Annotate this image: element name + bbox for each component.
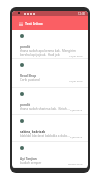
- staticText: Read Shop: [20, 74, 37, 78]
- staticText: Cerik pustand: [20, 78, 69, 82]
- button[interactable]: Navigation menu: [16, 19, 25, 28]
- staticText: 12:00: [78, 12, 86, 16]
- button[interactable]: pondit: [12, 30, 88, 59]
- staticText: pondit: [20, 103, 31, 107]
- staticText: bersha lapi jojicuk. Hadi job: [20, 53, 69, 57]
- staticText: 2 Jan 2019: [70, 135, 83, 138]
- staticText: thana sudah sharinsa kak. Kiriah jaa: [20, 107, 70, 111]
- staticText: blablabl blaclarat bablabla a dubcahb: [20, 134, 70, 138]
- staticText: pondit: [20, 45, 31, 49]
- staticText: sabina, bakrisab: [20, 130, 46, 134]
- staticText: Ayi Tanjian: [20, 157, 37, 161]
- staticText: 30 Dec 2018: [68, 162, 83, 165]
- staticText: thana sudah apa kenma kak. Mengirim: [20, 49, 76, 53]
- staticText: 12 Jan 2019: [69, 54, 83, 57]
- button[interactable]: sabina, bakrisab: [12, 115, 88, 142]
- staticText: 10 Jan 2019: [69, 79, 83, 82]
- staticText: budiah semper: [20, 161, 68, 165]
- button[interactable]: Read Shop: [12, 59, 88, 88]
- button[interactable]: pondit: [12, 88, 88, 115]
- staticText: Test Inbox: [25, 21, 43, 26]
- staticText: 3 Jan 2019: [70, 108, 83, 111]
- button[interactable]: Ayi Tanjian: [12, 142, 88, 168]
